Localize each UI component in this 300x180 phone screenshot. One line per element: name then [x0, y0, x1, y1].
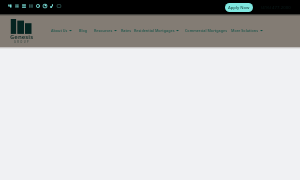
button[interactable]: Rates [119, 26, 134, 35]
staticText: Apply Now [228, 5, 250, 11]
button[interactable]: Twitter [28, 3, 34, 9]
button[interactable]: Genesis Group home [11, 18, 45, 48]
button[interactable]: Phone [49, 3, 55, 9]
staticText: Resources [94, 28, 113, 33]
staticText: G R O U P [14, 40, 29, 44]
button[interactable]: LinkedIn [14, 3, 20, 9]
staticText: Commercial Mortgages [185, 28, 227, 33]
staticText: Blog [79, 28, 88, 33]
staticText: Rates [121, 28, 132, 33]
button[interactable]: Instagram [42, 3, 48, 9]
staticText: Residential Mortgages [134, 28, 175, 33]
button[interactable]: Facebook [7, 3, 13, 9]
staticText: More Solutions [231, 28, 259, 33]
staticText: Genesis [10, 33, 34, 41]
button[interactable]: Apply Now [225, 3, 253, 12]
button[interactable]: Email [56, 3, 62, 9]
button[interactable]: Google [35, 3, 41, 9]
staticText: About Us [51, 28, 68, 33]
button[interactable]: Blog [77, 26, 90, 35]
button[interactable]: Residential Mortgages [132, 26, 181, 35]
button[interactable]: About Us [49, 26, 74, 35]
button[interactable]: Resources [92, 26, 119, 35]
button[interactable]: More Solutions [229, 26, 265, 35]
button[interactable]: (416) 477-2000 [261, 4, 291, 10]
button[interactable]: Commercial Mortgages [183, 26, 229, 35]
button[interactable]: YouTube [21, 3, 27, 9]
